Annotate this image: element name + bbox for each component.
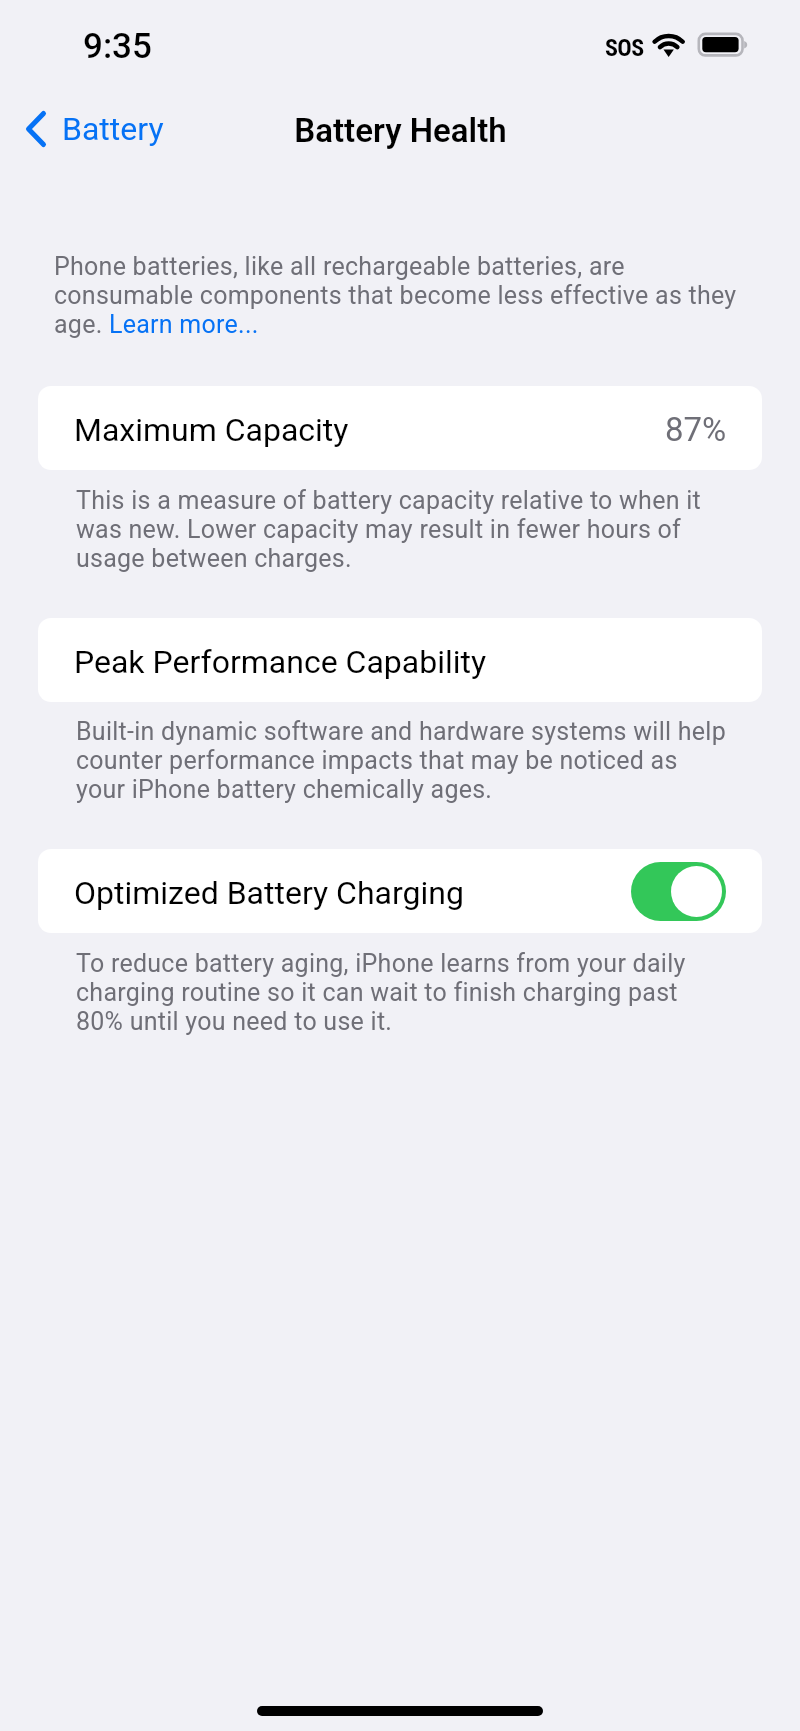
button[interactable]: Optimized Battery Charging — [38, 849, 762, 933]
button[interactable]: Learn more — [108, 309, 256, 339]
staticText: Built-in dynamic software and hardware s… — [76, 717, 726, 804]
staticText: 9:35 — [83, 26, 152, 67]
other: Battery — [695, 30, 753, 60]
staticText: Optimized Battery Charging — [74, 874, 464, 912]
button[interactable]: Peak Performance Capability — [38, 618, 762, 702]
button[interactable]: Optimized Battery Charging toggle — [631, 862, 726, 921]
button[interactable]: Maximum Capacity — [38, 386, 762, 470]
staticText: This is a measure of battery capacity re… — [76, 486, 701, 573]
staticText: Peak Performance Capability — [74, 643, 487, 681]
staticText: Battery Health — [294, 111, 507, 150]
staticText: SOS — [605, 34, 644, 62]
staticText: Phone batteries, like all rechargeable b… — [54, 252, 737, 339]
staticText: To reduce battery aging, iPhone learns f… — [76, 949, 686, 1036]
button[interactable]: Battery — [16, 104, 176, 154]
staticText: Battery — [62, 110, 164, 148]
other: Wi-Fi — [651, 29, 689, 59]
staticText: Maximum Capacity — [74, 411, 349, 449]
staticText: 87% — [665, 410, 727, 449]
